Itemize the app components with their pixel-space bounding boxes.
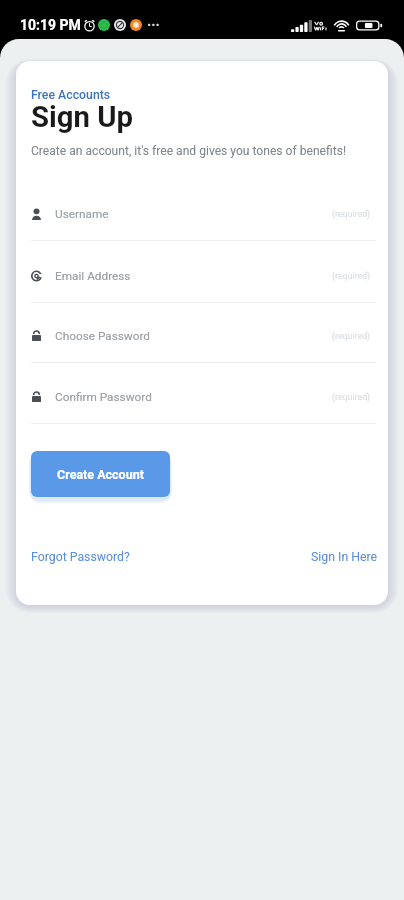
button[interactable]: Sign In Here: [311, 550, 378, 564]
staticText: Email Address: [55, 269, 131, 283]
staticText: (required): [332, 271, 371, 281]
staticText: Create an account, it's free and gives y…: [31, 144, 347, 158]
button[interactable]: Forgot Password?: [31, 550, 130, 564]
button[interactable]: Create Account: [31, 451, 170, 497]
button[interactable]: Email Address: [31, 254, 371, 298]
staticText: Confirm Password: [55, 390, 152, 404]
staticText: Sign Up: [31, 100, 134, 134]
staticText: Create Account: [57, 467, 144, 482]
staticText: (required): [332, 392, 371, 402]
staticText: Choose Password: [55, 329, 151, 343]
staticText: Username: [55, 207, 109, 221]
staticText: Free Accounts: [31, 88, 111, 102]
staticText: ···: [147, 17, 160, 33]
staticText: (required): [332, 209, 371, 219]
button[interactable]: Choose Password: [31, 314, 371, 358]
button[interactable]: Username: [31, 192, 371, 236]
staticText: (required): [332, 331, 371, 341]
button[interactable]: Confirm Password: [31, 375, 371, 419]
staticText: 10:19 PM: [20, 17, 81, 33]
